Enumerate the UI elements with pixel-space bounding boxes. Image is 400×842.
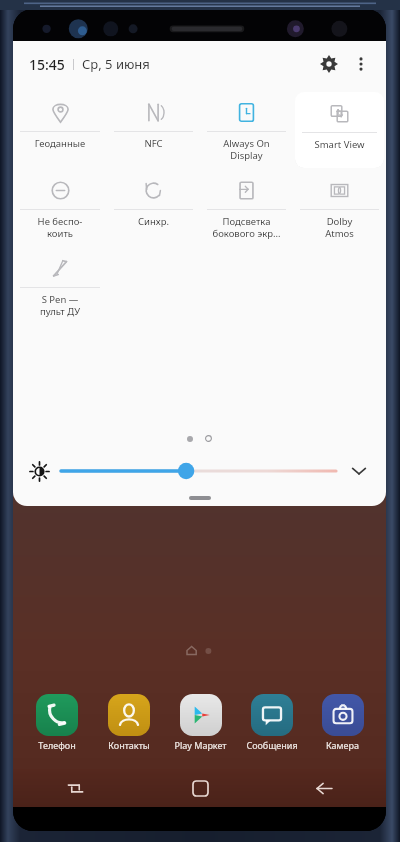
button[interactable]: NFC	[107, 91, 200, 169]
button[interactable]: Синхр.	[107, 169, 200, 247]
button[interactable]: Recents	[53, 769, 97, 807]
button[interactable]: More options	[346, 49, 376, 79]
staticText: Камера	[326, 739, 359, 751]
staticText: 15:45	[29, 55, 65, 74]
staticText: Телефон	[38, 739, 76, 751]
button[interactable]: Play Маркет	[165, 692, 236, 753]
staticText: NFC	[109, 137, 198, 150]
staticText: Не беспо- коить	[15, 215, 105, 240]
button[interactable]: Dolby Atmos	[293, 169, 386, 247]
staticText: Dolby Atmos	[295, 215, 384, 240]
button[interactable]	[61, 457, 336, 485]
staticText: Геоданные	[15, 137, 105, 150]
staticText: Ср, 5 июня	[82, 55, 150, 73]
button[interactable]: Smart View	[295, 92, 384, 168]
button[interactable]: Геоданные	[13, 91, 107, 169]
button[interactable]: Always On Display	[200, 91, 293, 169]
button[interactable]: Контакты	[93, 692, 165, 753]
button[interactable]: Не беспо- коить	[13, 169, 107, 247]
button[interactable]: Сообщения	[236, 692, 307, 753]
staticText: Smart View	[297, 138, 382, 151]
button[interactable]: Back	[302, 769, 346, 807]
button[interactable]: Brightness	[23, 455, 55, 487]
button[interactable]: Collapse panel	[189, 496, 211, 500]
staticText: Play Маркет	[174, 739, 227, 751]
staticText: Сообщения	[246, 739, 298, 751]
button[interactable]: S Pen — пульт ДУ	[13, 247, 107, 325]
staticText: Контакты	[108, 739, 150, 751]
button[interactable]: Expand	[342, 454, 376, 488]
staticText: Подсветка бокового экр…	[202, 215, 291, 240]
button[interactable]: Камера	[307, 692, 378, 753]
button[interactable]: Телефон	[21, 692, 93, 753]
staticText: Синхр.	[109, 215, 198, 228]
staticText: S Pen — пульт ДУ	[15, 293, 105, 318]
button[interactable]: Settings	[312, 47, 346, 81]
button[interactable]: Подсветка бокового экр…	[200, 169, 293, 247]
button[interactable]: Home	[178, 769, 222, 807]
staticText: Always On Display	[202, 137, 291, 162]
